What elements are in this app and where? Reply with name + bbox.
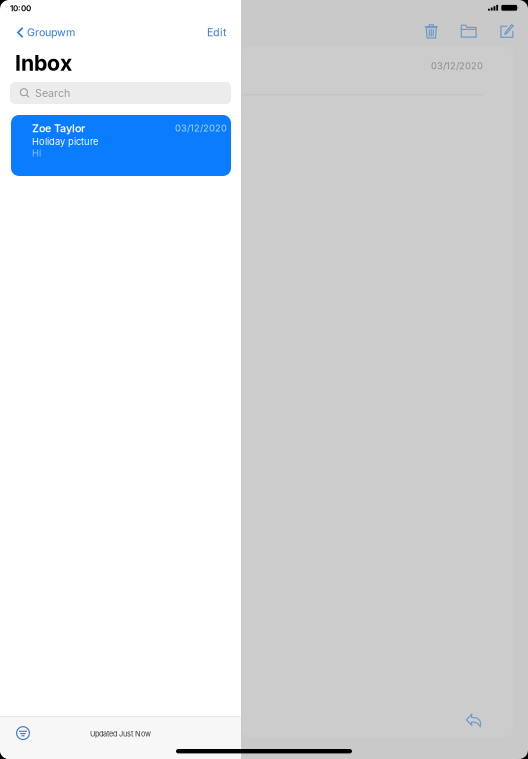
staticText: Hi [32,147,41,159]
button[interactable]: Move to folder [461,24,477,38]
button[interactable]: Reply [466,713,482,727]
staticText: 03/12/2020 [175,122,227,134]
button[interactable]: Zoe Taylor [11,115,231,176]
button[interactable]: Delete [425,23,438,38]
staticText: Search [35,86,70,99]
button[interactable]: Edit [200,21,233,44]
button[interactable]: Compose [500,25,513,38]
button[interactable]: Groupwm [11,21,81,44]
staticText: Edit [207,26,226,39]
staticText: 10:00 [10,4,31,13]
button[interactable]: Search [10,82,231,104]
staticText: Groupwm [27,26,75,39]
staticText: Updated Just Now [90,729,151,738]
button[interactable]: Filter [11,721,35,745]
staticText: Inbox [15,50,72,76]
staticText: Holiday picture [32,136,98,147]
staticText: 03/12/2020 [431,60,483,71]
staticText: Zoe Taylor [32,122,85,135]
